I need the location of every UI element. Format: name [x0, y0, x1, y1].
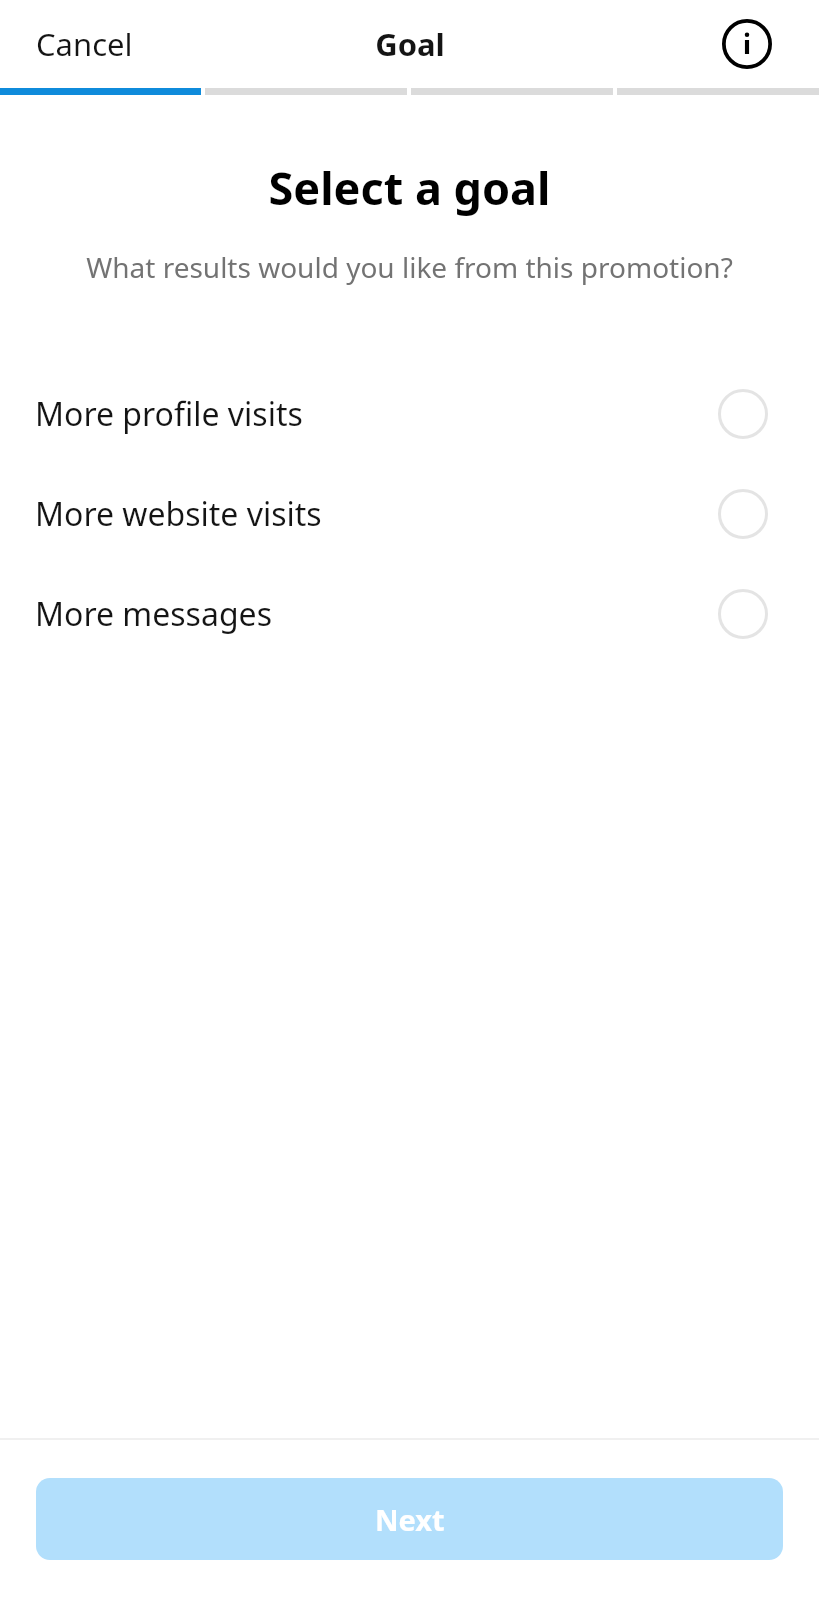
- staticText: More messages: [35, 592, 718, 636]
- button[interactable]: More messages: [0, 564, 819, 664]
- staticText: More profile visits: [35, 392, 718, 436]
- staticText: Select a goal: [0, 157, 819, 218]
- staticText: Cancel: [36, 23, 133, 65]
- staticText: Goal: [375, 23, 445, 65]
- staticText: Next: [375, 1500, 445, 1539]
- button[interactable]: Next: [36, 1478, 783, 1560]
- button[interactable]: Information: [721, 18, 773, 70]
- button[interactable]: More profile visits: [0, 364, 819, 464]
- staticText: More website visits: [35, 492, 718, 536]
- button[interactable]: More website visits: [0, 464, 819, 564]
- staticText: What results would you like from this pr…: [40, 248, 779, 286]
- button[interactable]: Cancel: [0, 13, 153, 75]
